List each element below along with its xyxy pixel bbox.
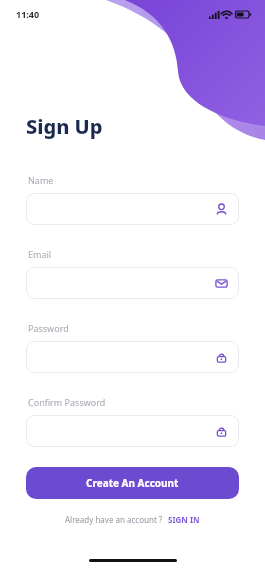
staticText: Create An Account [86, 476, 179, 490]
staticText: SIGN IN [168, 514, 200, 525]
button[interactable]: Email [26, 267, 239, 299]
button[interactable]: Confirm Password [26, 415, 239, 447]
button[interactable]: Name [26, 193, 239, 225]
staticText: Password [28, 322, 69, 334]
button[interactable]: SIGN IN [168, 514, 200, 525]
button[interactable]: Password [26, 341, 239, 373]
button[interactable]: Create An Account [26, 467, 239, 499]
staticText: Name [28, 174, 54, 186]
staticText: Sign Up [26, 113, 103, 140]
staticText: Already have an account ? [65, 514, 163, 525]
staticText: Email [28, 248, 52, 260]
staticText: Confirm Password [28, 396, 106, 408]
staticText: 11:40 [16, 8, 40, 20]
